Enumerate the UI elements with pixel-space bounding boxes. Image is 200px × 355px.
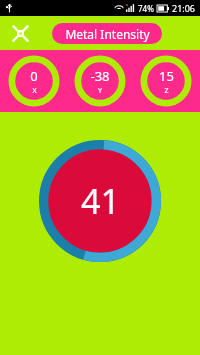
staticText: 41 — [81, 178, 120, 224]
button[interactable]: Collapse — [7, 20, 33, 46]
staticText: 74% — [138, 3, 154, 14]
staticText: Z — [164, 86, 169, 96]
button[interactable]: Metal intensity 41 — [38, 139, 162, 263]
staticText: X — [32, 86, 37, 96]
staticText: 0 — [30, 67, 38, 85]
staticText: Metal Intensity — [65, 26, 150, 42]
staticText: -38 — [90, 67, 110, 85]
button[interactable]: Metal Intensity — [52, 23, 162, 44]
button[interactable]: 0 — [7, 54, 61, 108]
staticText: 15 — [159, 67, 174, 85]
button[interactable]: -38 — [73, 54, 127, 108]
staticText: Y — [98, 86, 102, 96]
button[interactable]: 15 — [139, 54, 193, 108]
staticText: 21:06 — [172, 2, 196, 14]
